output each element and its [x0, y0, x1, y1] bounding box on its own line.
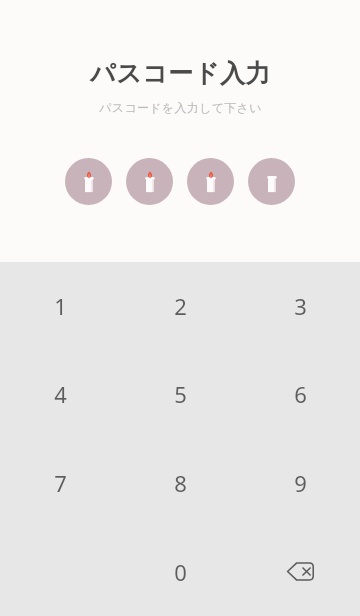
staticText: 0 — [174, 557, 187, 587]
staticText: 3 — [294, 291, 307, 321]
staticText: 1 — [54, 291, 67, 321]
staticText: 7 — [54, 468, 67, 498]
button[interactable]: 1 — [0, 262, 120, 350]
button[interactable]: 2 — [120, 262, 240, 350]
staticText: パスコードを入力して下さい — [99, 100, 262, 115]
staticText: 8 — [174, 468, 187, 498]
other: Digit entered — [187, 158, 234, 205]
button[interactable]: 8 — [120, 438, 240, 527]
other: Digit entered — [65, 158, 112, 205]
button[interactable]: 5 — [120, 350, 240, 438]
button[interactable]: 0 — [120, 527, 240, 616]
other: Digit entered — [126, 158, 173, 205]
staticText: 9 — [294, 468, 307, 498]
staticText: パスコード入力 — [90, 58, 271, 89]
button[interactable]: 4 — [0, 350, 120, 438]
button[interactable]: 9 — [240, 438, 360, 527]
staticText: 2 — [174, 291, 187, 321]
button[interactable]: 3 — [240, 262, 360, 350]
staticText: 4 — [54, 379, 67, 409]
staticText: 6 — [294, 379, 307, 409]
button[interactable]: Delete — [240, 527, 360, 616]
staticText: 5 — [174, 379, 187, 409]
other: Digit empty — [248, 158, 295, 205]
button[interactable]: 6 — [240, 350, 360, 438]
button[interactable]: 7 — [0, 438, 120, 527]
